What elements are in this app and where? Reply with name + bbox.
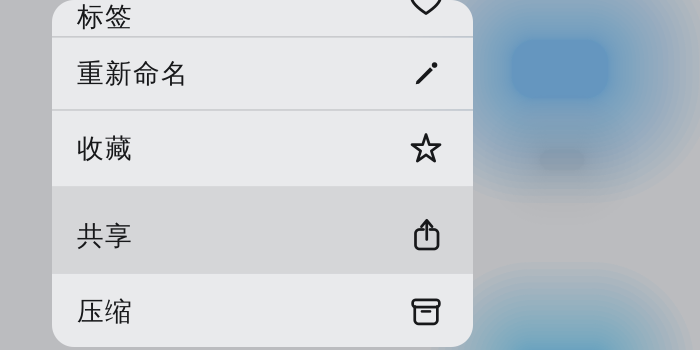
staticText: 共享 bbox=[77, 220, 132, 253]
staticText: 压缩 bbox=[77, 295, 132, 328]
staticText: 收藏 bbox=[77, 132, 132, 165]
button[interactable]: 压缩 bbox=[52, 274, 473, 350]
staticText: 重新命名 bbox=[77, 57, 188, 90]
button[interactable]: 标签 bbox=[52, 0, 473, 36]
button[interactable]: 重新命名 bbox=[52, 37, 473, 109]
staticText: 标签 bbox=[77, 0, 132, 33]
button[interactable]: 收藏 bbox=[52, 111, 473, 187]
button[interactable]: 共享 bbox=[52, 187, 473, 274]
